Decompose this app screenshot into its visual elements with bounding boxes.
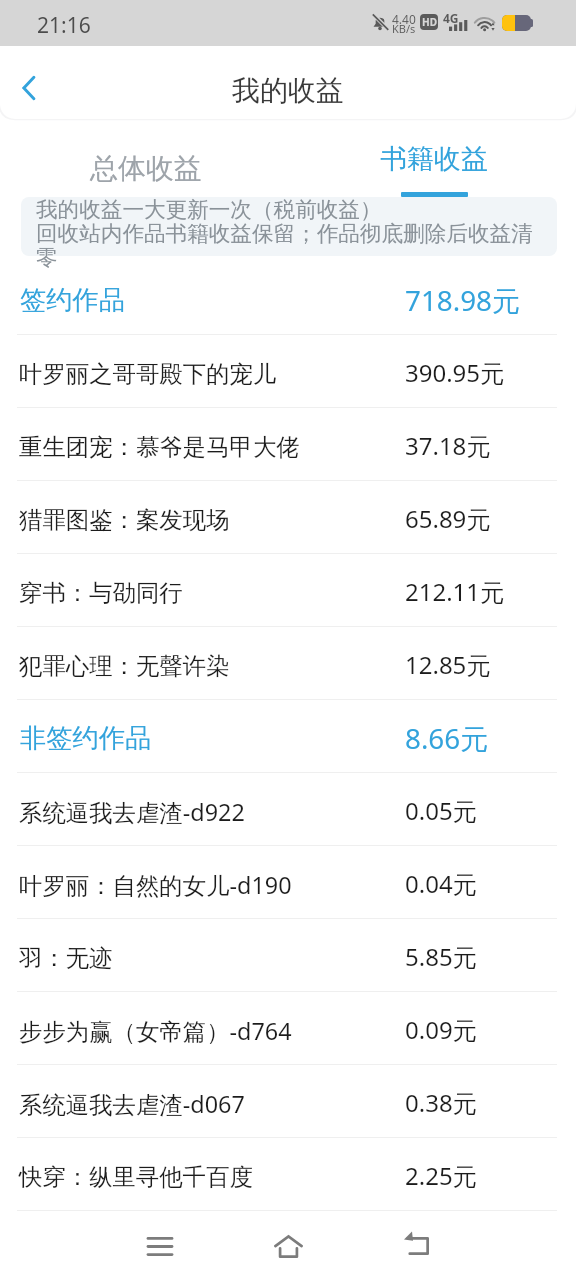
- staticText: 叶罗丽：自然的女儿-d190: [19, 869, 292, 901]
- button[interactable]: Back: [388, 1218, 444, 1274]
- button[interactable]: 步步为赢（女帝篇）-d764: [0, 992, 576, 1065]
- staticText: 212.11元: [405, 575, 505, 608]
- staticText: 2.25元: [405, 1159, 477, 1192]
- button[interactable]: 系统逼我去虐渣-d067: [0, 1065, 576, 1138]
- button[interactable]: Recent apps: [132, 1218, 188, 1274]
- staticText: 8.66元: [405, 719, 488, 757]
- staticText: 签约作品: [20, 284, 126, 317]
- staticText: 0.38元: [405, 1086, 477, 1119]
- staticText: 我的收益: [232, 73, 344, 108]
- staticText: 我的收益一大更新一次（税前收益） 回收站内作品书籍收益保留；作品彻底删除后收益清…: [36, 196, 546, 272]
- staticText: 4.40: [392, 11, 416, 27]
- button[interactable]: 快穿：纵里寻他千百度: [0, 1138, 576, 1211]
- staticText: 718.98元: [405, 281, 520, 319]
- button[interactable]: 穿书：与劭同行: [0, 554, 576, 627]
- button[interactable]: 非签约作品: [0, 700, 576, 773]
- button[interactable]: 重生团宠：慕爷是马甲大佬: [0, 408, 576, 481]
- staticText: 0.05元: [405, 794, 477, 827]
- button[interactable]: 犯罪心理：无聲许染: [0, 627, 576, 700]
- button[interactable]: 叶罗丽之哥哥殿下的宠儿: [0, 335, 576, 408]
- staticText: 步步为赢（女帝篇）-d764: [19, 1015, 292, 1047]
- staticText: 37.18元: [405, 429, 491, 462]
- staticText: HD: [422, 15, 437, 29]
- staticText: 5.85元: [405, 940, 477, 973]
- staticText: 12.85元: [405, 648, 491, 681]
- staticText: 0.04元: [405, 867, 477, 900]
- staticText: 羽：无迹: [19, 943, 113, 972]
- button[interactable]: 签约作品: [0, 262, 576, 335]
- staticText: 重生团宠：慕爷是马甲大佬: [19, 432, 300, 461]
- button[interactable]: 总体收益: [38, 133, 254, 195]
- staticText: 65.89元: [405, 502, 491, 535]
- button[interactable]: Home: [260, 1218, 316, 1274]
- staticText: 书籍收益: [380, 142, 488, 176]
- button[interactable]: 猎罪图鉴：案发现场: [0, 481, 576, 554]
- staticText: 总体收益: [90, 151, 202, 186]
- button[interactable]: Back: [2, 60, 58, 116]
- staticText: 叶罗丽之哥哥殿下的宠儿: [19, 359, 277, 388]
- staticText: 390.95元: [405, 356, 505, 389]
- staticText: 系统逼我去虐渣-d067: [19, 1088, 245, 1120]
- staticText: 0.09元: [405, 1013, 477, 1046]
- button[interactable]: 书籍收益: [326, 133, 542, 195]
- staticText: 穿书：与劭同行: [19, 578, 183, 607]
- staticText: 4G: [443, 10, 459, 26]
- staticText: 猎罪图鉴：案发现场: [19, 505, 230, 534]
- staticText: 犯罪心理：无聲许染: [19, 651, 230, 680]
- button[interactable]: 系统逼我去虐渣-d922: [0, 773, 576, 846]
- button[interactable]: 叶罗丽：自然的女儿-d190: [0, 846, 576, 919]
- staticText: 21:16: [37, 11, 91, 40]
- staticText: 非签约作品: [20, 722, 152, 755]
- staticText: KB/s: [392, 21, 416, 36]
- staticText: 系统逼我去虐渣-d922: [19, 796, 245, 828]
- staticText: 快穿：纵里寻他千百度: [19, 1162, 253, 1191]
- button[interactable]: 羽：无迹: [0, 919, 576, 992]
